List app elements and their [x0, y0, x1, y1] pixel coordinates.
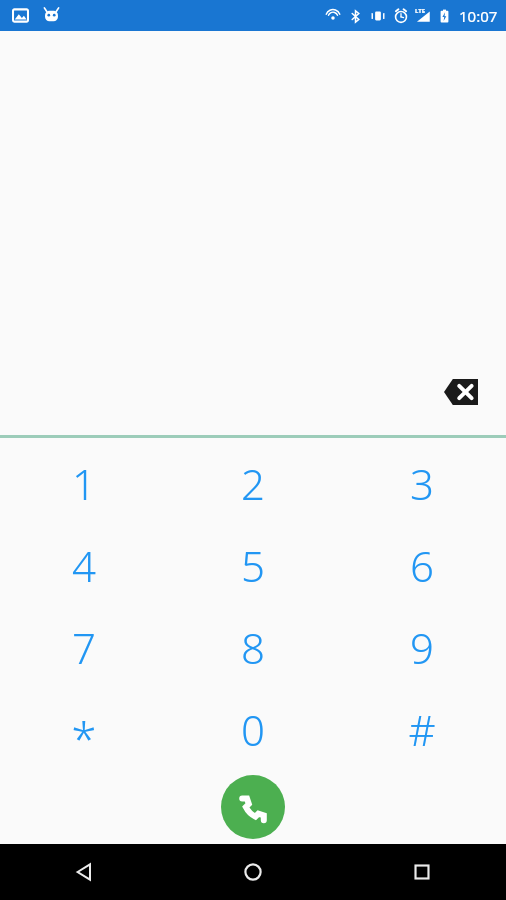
staticText: 2 [241, 455, 265, 512]
button[interactable]: 8 [168, 606, 337, 688]
button[interactable]: Backspace [432, 363, 490, 421]
staticText: 1 [72, 455, 96, 512]
button[interactable]: Call [221, 775, 285, 839]
button[interactable]: 1 [0, 442, 168, 524]
staticText: * [71, 707, 97, 770]
button[interactable]: 4 [0, 524, 168, 606]
button[interactable]: Recents [337, 844, 506, 900]
button[interactable]: Back [0, 844, 168, 900]
staticText: 9 [410, 619, 434, 676]
button[interactable]: 2 [168, 442, 337, 524]
staticText: 3 [410, 455, 434, 512]
button[interactable]: 5 [168, 524, 337, 606]
button[interactable]: 3 [337, 442, 506, 524]
staticText: 4 [72, 537, 96, 594]
button[interactable]: 0 [168, 688, 337, 770]
staticText: LTE [415, 7, 426, 15]
button[interactable]: 7 [0, 606, 168, 688]
staticText: 5 [241, 537, 265, 594]
staticText: 10:07 [459, 6, 498, 26]
staticText: 7 [72, 619, 96, 676]
button[interactable]: # [337, 688, 506, 770]
button[interactable]: Home [168, 844, 337, 900]
button[interactable]: 9 [337, 606, 506, 688]
staticText: 6 [410, 537, 434, 594]
button[interactable]: 6 [337, 524, 506, 606]
staticText: 0 [241, 701, 265, 758]
button[interactable]: * [0, 688, 168, 770]
staticText: 8 [241, 619, 265, 676]
staticText: # [408, 701, 436, 758]
